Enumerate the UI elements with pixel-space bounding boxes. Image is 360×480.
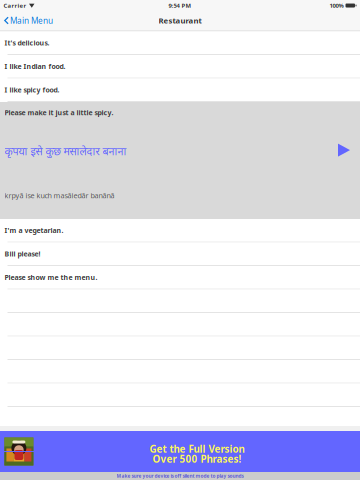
staticText: Carrier [3,1,26,9]
staticText: 9:54 PM [168,1,191,9]
button[interactable]: I like spicy food. [0,78,360,102]
staticText: I'm a vegetarian. [4,226,63,235]
staticText: Please make it just a little spicy. [4,108,113,117]
button[interactable]: I'm a vegetarian. [0,219,360,242]
button[interactable]: Please show me the menu. [0,266,360,289]
staticText: Restaurant [158,15,201,26]
staticText: I like spicy food. [4,85,59,94]
staticText: Make sure your device is off silent mode… [116,473,243,479]
button[interactable]: Bill please! [0,242,360,266]
button[interactable]: It's delicious. [0,31,360,55]
staticText: कृपया इसे कुछ मसालेदार बनाना [4,144,126,158]
button[interactable]: Main Menu [0,12,53,29]
staticText: Get the Full Version [149,442,244,456]
staticText: It's delicious. [4,38,49,47]
staticText: I like Indian food. [4,62,65,71]
staticText: 100% [329,1,343,9]
button[interactable]: Get the Full Version [0,431,360,472]
staticText: Over 500 Phrases! [152,452,241,466]
staticText: Bill please! [4,249,40,258]
staticText: krpyā ise kuch masāledār banānā [4,191,114,200]
staticText: Main Menu [10,15,53,26]
button[interactable]: Please make it just a little spicy. [0,102,360,219]
staticText: Please show me the menu. [4,273,97,282]
button[interactable]: I like Indian food. [0,55,360,78]
